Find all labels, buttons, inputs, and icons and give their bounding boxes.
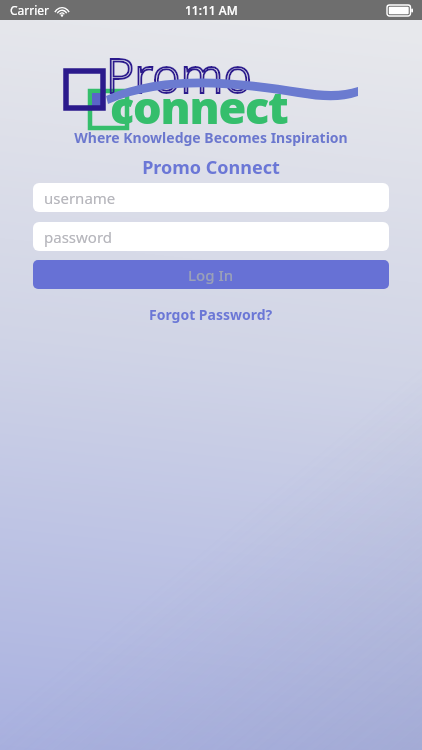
staticText: Promo — [106, 42, 252, 107]
staticText: connect — [110, 76, 288, 137]
button[interactable]: Log In — [33, 260, 389, 289]
staticText: 11:11 AM — [185, 2, 238, 18]
staticText: Forgot Password? — [149, 305, 273, 324]
button[interactable]: Forgot Password? — [0, 303, 422, 325]
staticText: Log In — [188, 265, 234, 285]
staticText: Carrier — [10, 2, 50, 18]
staticText: Promo Connect — [0, 155, 422, 180]
staticText: password — [44, 227, 112, 247]
button[interactable]: username — [33, 183, 389, 212]
button[interactable]: password — [33, 222, 389, 251]
staticText: Where Knowledge Becomes Inspiration — [0, 128, 422, 147]
staticText: username — [44, 188, 116, 208]
